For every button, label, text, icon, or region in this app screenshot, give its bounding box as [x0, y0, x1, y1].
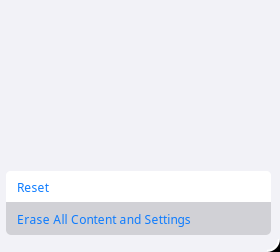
button[interactable]: Erase All Content and Settings: [6, 202, 271, 235]
button[interactable]: Reset: [6, 171, 271, 202]
staticText: Reset: [17, 179, 49, 195]
staticText: Erase All Content and Settings: [17, 211, 191, 227]
